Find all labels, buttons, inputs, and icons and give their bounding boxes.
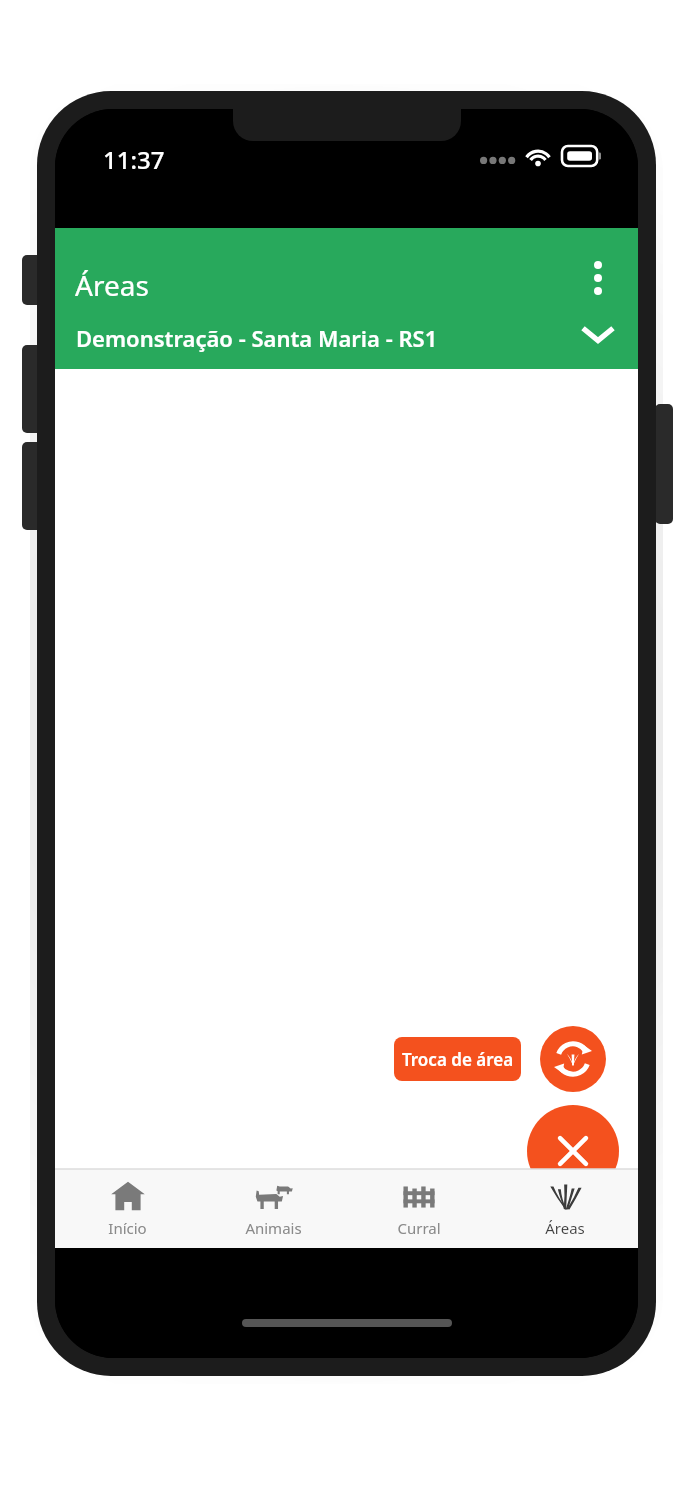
button[interactable]: Áreas (492, 1169, 638, 1248)
button[interactable]: Troca de área (394, 1037, 521, 1081)
staticText: Áreas (545, 1218, 585, 1238)
button[interactable]: Fechar menu (527, 1105, 619, 1197)
staticText: Áreas (75, 266, 149, 304)
staticText: Início (108, 1218, 147, 1238)
button[interactable]: Início (55, 1169, 200, 1248)
staticText: Animais (245, 1218, 302, 1238)
button[interactable]: Troca de área (540, 1026, 606, 1092)
button[interactable]: Curral (346, 1169, 492, 1248)
staticText: Curral (397, 1218, 441, 1238)
button[interactable]: Expand farm selector (572, 308, 624, 360)
button[interactable]: More options (570, 250, 626, 306)
staticText: 11:37 (103, 143, 165, 176)
staticText: Demonstração - Santa Maria - RS1 (76, 323, 438, 353)
button[interactable]: Animais (200, 1169, 346, 1248)
staticText: Troca de área (402, 1048, 514, 1071)
